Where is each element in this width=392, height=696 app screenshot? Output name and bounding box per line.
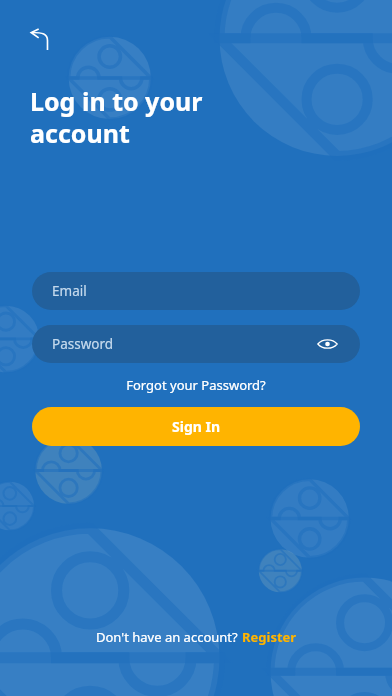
staticText: Sign In bbox=[172, 417, 221, 436]
staticText: Log in to your account bbox=[30, 84, 203, 150]
staticText: Password bbox=[52, 335, 114, 353]
button[interactable]: Forgot your Password? bbox=[32, 376, 360, 394]
staticText: Forgot your Password? bbox=[126, 376, 266, 394]
staticText: Register bbox=[242, 628, 297, 646]
button[interactable]: Password bbox=[32, 325, 360, 363]
button[interactable]: Don't have an account? bbox=[96, 628, 297, 646]
button[interactable]: Show password bbox=[314, 331, 340, 357]
staticText: Email bbox=[52, 282, 87, 300]
button[interactable]: Email bbox=[32, 272, 360, 310]
button[interactable]: Back bbox=[21, 21, 59, 59]
staticText: Don't have an account? bbox=[96, 628, 242, 646]
button[interactable]: Sign In bbox=[32, 407, 360, 446]
